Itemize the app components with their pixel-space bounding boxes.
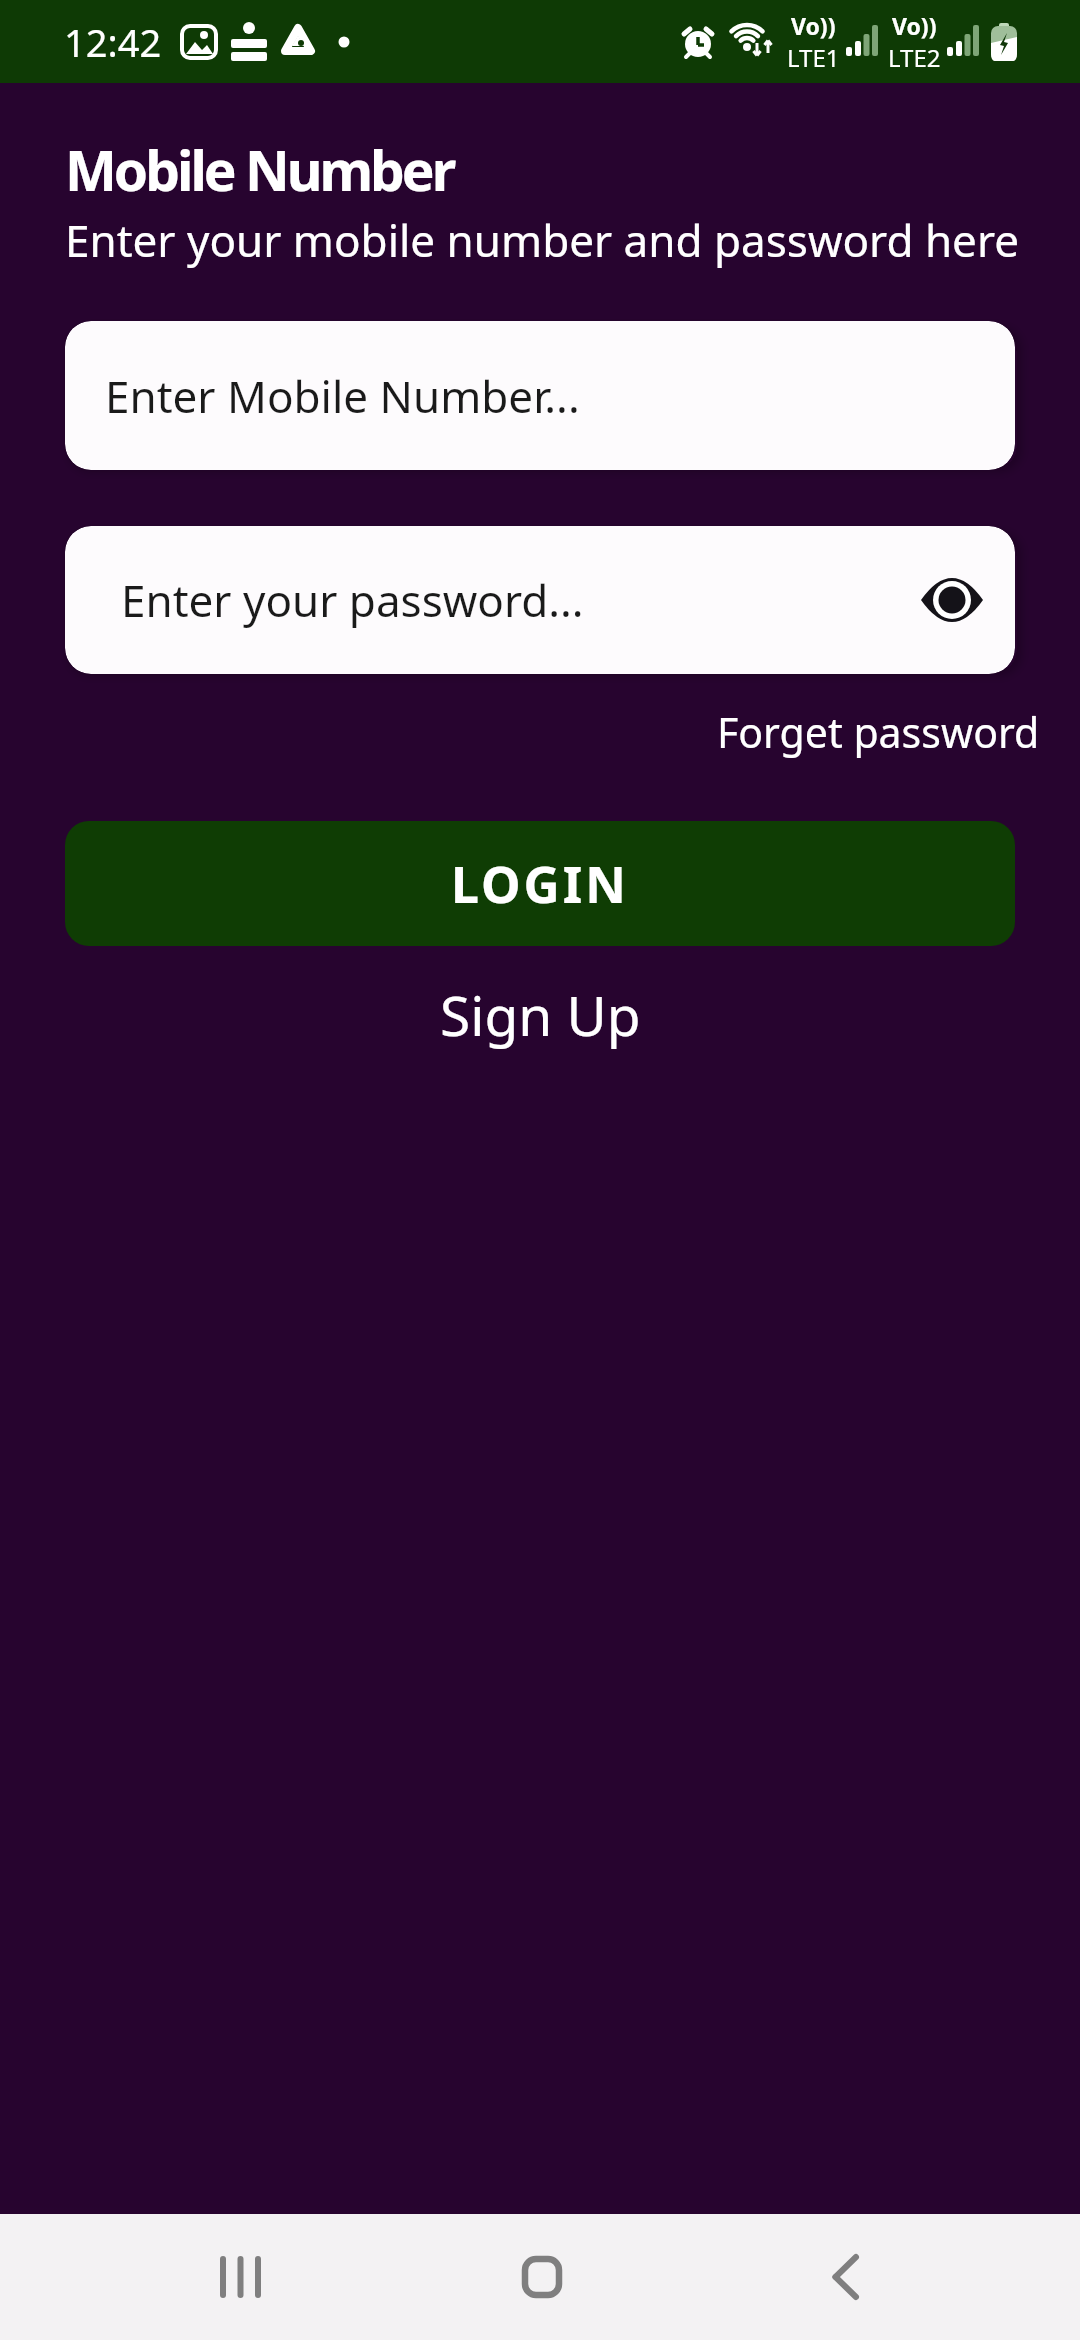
staticText: Vo)) bbox=[892, 10, 937, 41]
staticText: LOGIN bbox=[451, 850, 629, 918]
staticText: LTE1 bbox=[787, 41, 840, 74]
staticText: LTE2 bbox=[888, 41, 941, 74]
staticText: Vo)) bbox=[791, 10, 836, 41]
staticText: Enter your password... bbox=[121, 570, 584, 630]
button[interactable]: Enter Mobile Number... bbox=[65, 321, 1015, 470]
button[interactable] bbox=[921, 569, 983, 631]
button[interactable]: LOGIN bbox=[65, 821, 1015, 946]
staticText: Enter your mobile number and password he… bbox=[65, 210, 1020, 270]
staticText: Enter Mobile Number... bbox=[105, 366, 580, 426]
button[interactable]: Enter your password... bbox=[65, 526, 1015, 674]
button[interactable]: Sign Up bbox=[440, 977, 641, 1052]
staticText: Mobile Number bbox=[65, 132, 454, 207]
button[interactable] bbox=[151, 2214, 331, 2340]
staticText: 12:42 bbox=[64, 16, 162, 68]
button[interactable]: Forget password bbox=[717, 704, 1040, 760]
button[interactable] bbox=[755, 2214, 935, 2340]
button[interactable] bbox=[452, 2214, 632, 2340]
